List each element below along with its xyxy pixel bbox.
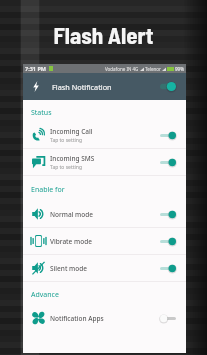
staticText: 99% (175, 66, 184, 72)
button[interactable]: Switch on (160, 130, 176, 141)
button[interactable]: Switch on (160, 236, 176, 247)
staticText: 7:31 PM (25, 65, 47, 72)
staticText: Flash Notification (52, 82, 112, 92)
staticText: Vodafone IN 4G (105, 66, 139, 72)
staticText: Normal mode (50, 210, 93, 219)
button[interactable]: Switch off (160, 313, 176, 324)
staticText: Silent mode (50, 264, 87, 273)
staticText: Incoming SMS (50, 154, 95, 163)
button[interactable]: Switch on (160, 157, 176, 168)
button[interactable]: Switch on (160, 263, 176, 274)
button[interactable]: Silent mode (23, 255, 186, 281)
staticText: Vibrate mode (50, 237, 92, 246)
staticText: Incoming Call (50, 127, 93, 136)
button[interactable]: Incoming SMS (23, 149, 186, 175)
staticText: Status (31, 108, 52, 118)
button[interactable]: Switch on (160, 81, 176, 92)
staticText: Advance (31, 290, 59, 300)
button[interactable]: Flash (33, 81, 39, 92)
staticText: Notification Apps (50, 314, 104, 323)
button[interactable]: Switch on (160, 209, 176, 220)
staticText: Enable for (31, 185, 65, 195)
button[interactable]: Incoming Call (23, 122, 186, 148)
button[interactable]: Notification Apps (23, 305, 186, 331)
button[interactable]: Vibrate mode (23, 228, 186, 254)
staticText: Telenor (145, 66, 161, 72)
button[interactable]: Normal mode (23, 201, 186, 227)
staticText: Tap to setting (50, 137, 82, 144)
staticText: Flash Alert (0, 21, 207, 49)
staticText: Tap to setting (50, 164, 82, 171)
